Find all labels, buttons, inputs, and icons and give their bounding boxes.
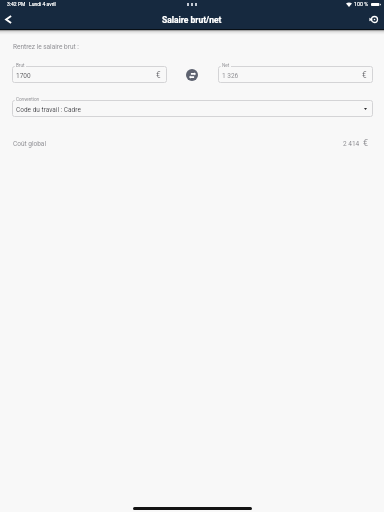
button[interactable] [218,66,373,83]
staticText: € [362,70,367,80]
staticText: Brut [16,63,25,68]
staticText: 2 414 [343,140,360,148]
button[interactable]: Swap brut and net [186,69,198,81]
staticText: Code du travail : Cadre [16,106,81,114]
button[interactable] [12,100,373,117]
staticText: Salaire brut/net [162,15,222,25]
staticText: Net [222,63,230,68]
staticText: 3:42 PM Lundi 4 avril [7,1,56,7]
staticText: € [363,138,369,149]
staticText: Convention [16,97,40,102]
button[interactable]: Back [0,9,17,30]
staticText: Rentrez le salaire brut : [13,43,79,51]
staticText: 1 326 [222,72,239,80]
button[interactable] [12,66,167,83]
staticText: 1700 [16,72,31,80]
staticText: 100 % [354,1,369,7]
staticText: € [156,70,161,80]
staticText: Coût global [13,140,46,148]
button[interactable]: History [362,9,384,30]
